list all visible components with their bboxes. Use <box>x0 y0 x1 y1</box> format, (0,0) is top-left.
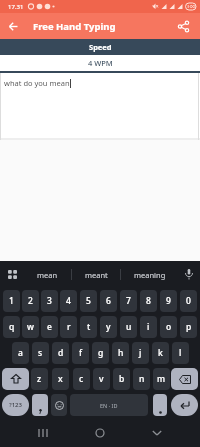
staticText: q <box>9 321 15 333</box>
staticText: 7 <box>126 295 131 307</box>
staticText: a <box>18 347 23 359</box>
button[interactable]: meaning <box>121 261 178 288</box>
button[interactable]: b <box>113 368 130 390</box>
staticText: ?123 <box>9 401 22 409</box>
button[interactable]: u <box>120 316 137 338</box>
button[interactable]: m <box>153 368 170 390</box>
button[interactable]: 0 <box>180 290 197 312</box>
button[interactable]: s <box>32 342 49 364</box>
staticText: 17.31 <box>8 3 24 11</box>
staticText: mean <box>37 270 58 280</box>
button[interactable]: 9 <box>160 290 177 312</box>
button[interactable] <box>153 394 167 416</box>
button[interactable] <box>0 13 26 39</box>
staticText: g <box>98 347 104 359</box>
staticText: l <box>179 347 182 359</box>
button[interactable] <box>32 394 48 416</box>
staticText: 2 <box>28 295 33 307</box>
button[interactable]: meant <box>72 261 120 288</box>
staticText: t <box>87 321 91 333</box>
button[interactable]: z <box>31 368 48 390</box>
staticText: meaning <box>134 270 166 280</box>
button[interactable]: 6 <box>100 290 117 312</box>
button[interactable]: 3 <box>41 290 58 312</box>
staticText: f <box>79 347 83 359</box>
staticText: 6 <box>106 295 111 307</box>
staticText: e <box>47 321 52 333</box>
staticText: n <box>139 373 145 385</box>
button[interactable]: g <box>92 342 109 364</box>
button[interactable] <box>171 394 198 416</box>
staticText: m <box>157 373 166 385</box>
button[interactable] <box>51 394 67 416</box>
staticText: 4 <box>66 295 71 307</box>
staticText: Free Hand Typing <box>33 20 116 33</box>
button[interactable]: x <box>52 368 69 390</box>
staticText: 4 WPM <box>88 58 113 68</box>
button[interactable]: l <box>172 342 189 364</box>
button[interactable] <box>143 418 171 447</box>
button[interactable] <box>29 418 57 447</box>
button[interactable]: 4 <box>60 290 77 312</box>
button[interactable]: w <box>22 316 39 338</box>
staticText: k <box>158 347 163 359</box>
staticText: Speed <box>89 42 112 52</box>
staticText: y <box>106 321 111 333</box>
staticText: h <box>118 347 124 359</box>
button[interactable]: n <box>133 368 150 390</box>
staticText: what do you mean <box>4 78 70 88</box>
staticText: EN · ID <box>100 402 118 409</box>
button[interactable]: 1 <box>3 290 20 312</box>
staticText: u <box>126 321 132 333</box>
button[interactable]: v <box>93 368 110 390</box>
staticText: s <box>38 347 43 359</box>
button[interactable]: d <box>52 342 69 364</box>
button[interactable]: o <box>160 316 177 338</box>
staticText: o <box>166 321 172 333</box>
button[interactable]: f <box>72 342 89 364</box>
button[interactable]: y <box>100 316 117 338</box>
staticText: w <box>27 321 34 333</box>
button[interactable]: ?123 <box>2 394 29 416</box>
staticText: j <box>139 347 142 359</box>
staticText: b <box>119 373 125 385</box>
staticText: meant <box>85 270 108 280</box>
button[interactable]: t <box>80 316 97 338</box>
button[interactable]: i <box>140 316 157 338</box>
button[interactable]: 7 <box>120 290 137 312</box>
button[interactable] <box>171 368 198 390</box>
staticText: c <box>79 373 84 385</box>
staticText: d <box>58 347 64 359</box>
staticText: p <box>186 321 192 333</box>
button[interactable]: j <box>132 342 149 364</box>
button[interactable]: a <box>12 342 29 364</box>
button[interactable] <box>0 261 24 288</box>
staticText: i <box>147 321 150 333</box>
button[interactable]: q <box>3 316 20 338</box>
button[interactable]: EN · ID <box>70 394 148 416</box>
button[interactable]: h <box>112 342 129 364</box>
staticText: 9 <box>166 295 171 307</box>
staticText: z <box>37 373 42 385</box>
button[interactable]: e <box>41 316 58 338</box>
button[interactable]: r <box>60 316 77 338</box>
button[interactable]: 2 <box>22 290 39 312</box>
button[interactable]: c <box>73 368 90 390</box>
staticText: v <box>99 373 104 385</box>
button[interactable]: k <box>152 342 169 364</box>
button[interactable] <box>170 13 196 39</box>
staticText: r <box>67 321 71 333</box>
staticText: 0 <box>186 295 191 307</box>
button[interactable]: 8 <box>140 290 157 312</box>
button[interactable] <box>2 368 29 390</box>
button[interactable]: p <box>180 316 197 338</box>
staticText: 1 <box>9 295 14 307</box>
button[interactable] <box>86 418 114 447</box>
staticText: 3 <box>47 295 52 307</box>
button[interactable] <box>178 261 200 288</box>
button[interactable]: 5 <box>80 290 97 312</box>
button[interactable]: mean <box>24 261 71 288</box>
staticText: 8 <box>146 295 151 307</box>
staticText: x <box>58 373 63 385</box>
staticText: 5 <box>86 295 91 307</box>
